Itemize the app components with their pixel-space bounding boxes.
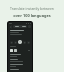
button[interactable]: Recent phrase (14, 49, 17, 52)
button[interactable]: Camera (14, 41, 17, 44)
button[interactable]: Conversation (23, 41, 26, 44)
button[interactable]: Handwriting (10, 41, 13, 44)
button[interactable]: Microphone (18, 40, 22, 44)
staticText: Translate instantly between (3, 6, 61, 11)
button[interactable]: Back (9, 25, 12, 28)
button[interactable]: Translate (27, 41, 30, 44)
button[interactable]: Saved phrase (10, 49, 13, 52)
button[interactable] (8, 53, 32, 58)
staticText: over 100 languages (3, 13, 61, 18)
button[interactable] (8, 63, 32, 68)
button[interactable] (8, 58, 32, 63)
button[interactable] (13, 25, 27, 28)
button[interactable] (8, 68, 32, 72)
